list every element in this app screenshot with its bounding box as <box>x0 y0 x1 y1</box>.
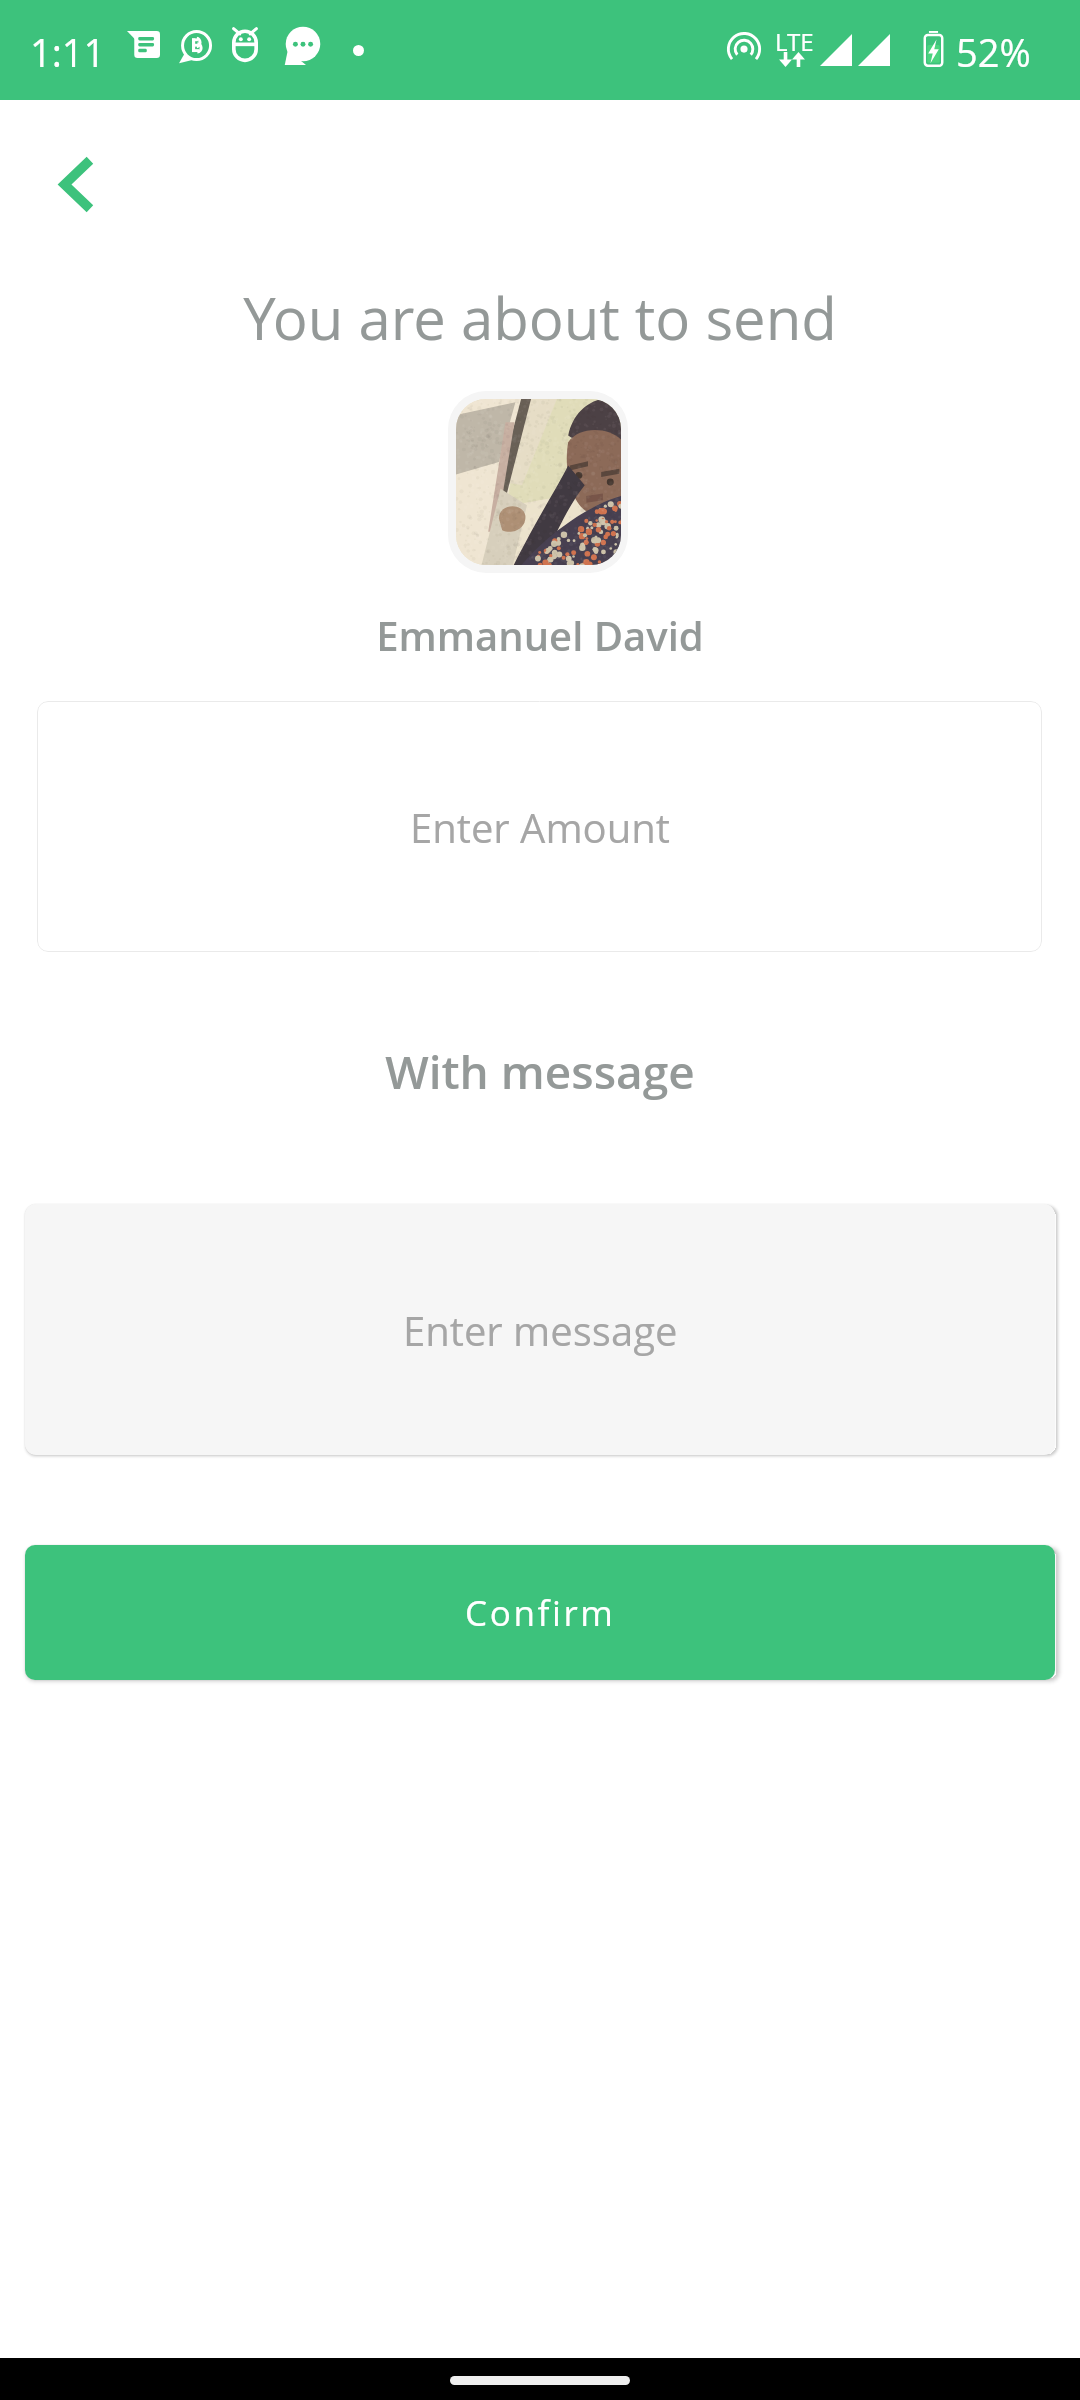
button[interactable]: Confirm <box>25 1545 1055 1680</box>
staticText: 52% <box>956 26 1031 78</box>
button[interactable]: Enter Amount <box>37 701 1042 952</box>
staticText: LTE <box>775 25 814 58</box>
staticText: Enter message <box>403 1303 678 1357</box>
button[interactable]: Back <box>18 129 128 239</box>
staticText: With message <box>0 1040 1080 1103</box>
staticText: Enter Amount <box>410 800 670 854</box>
button[interactable]: Enter message <box>25 1204 1055 1455</box>
staticText: 1:11 <box>30 26 106 78</box>
staticText: Confirm <box>465 1589 616 1637</box>
staticText: Emmanuel David <box>0 608 1080 662</box>
staticText: You are about to send <box>0 278 1080 357</box>
